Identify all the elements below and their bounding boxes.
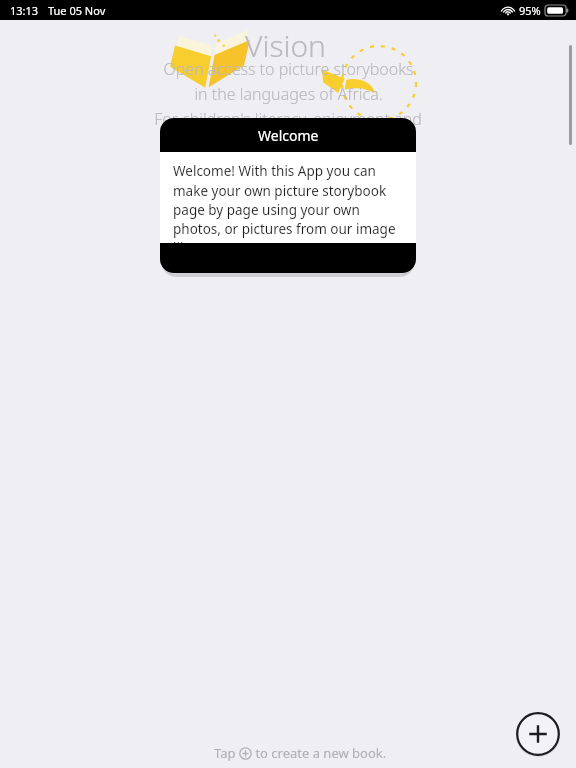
button[interactable] [160,243,416,273]
staticText: 95% [519,3,541,18]
staticText: Vision [245,25,326,66]
staticText: For children's literacy, enjoyment and [154,108,422,130]
staticText: Welcome [258,126,319,145]
button[interactable]: Create a new book [515,711,561,757]
staticText: Welcome! With this App you can make your… [173,162,406,243]
staticText: Tap [214,744,239,762]
staticText: to create a new book. [252,744,387,762]
staticText: 13:13 [10,3,39,18]
staticText: in the languages of Africa. [194,83,383,105]
staticText: Open access to picture storybooks [163,58,414,80]
staticText: Tue 05 Nov [48,3,106,18]
